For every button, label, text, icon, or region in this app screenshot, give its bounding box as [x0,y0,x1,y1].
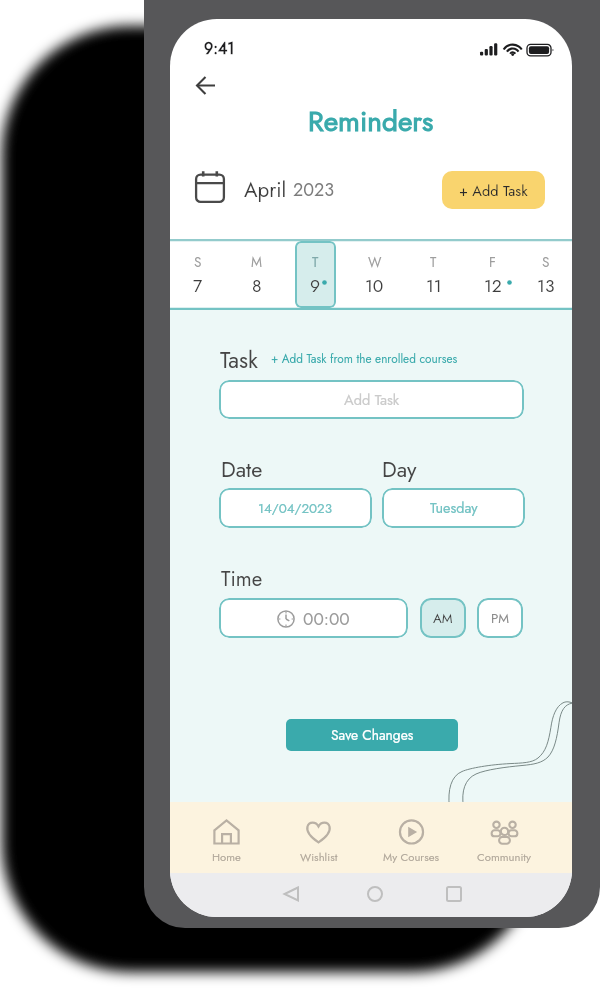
staticText: Reminders [308,101,434,135]
staticText: Wishlist [300,849,338,865]
staticText: + Add Task [459,180,528,201]
button[interactable]: Wishlist [272,802,365,873]
staticText: Day [382,454,417,485]
staticText: April [244,175,293,205]
button[interactable]: Add Task [219,380,524,419]
button[interactable]: S [177,241,218,308]
staticText: 2023 [293,177,335,203]
button[interactable]: 00:00 [219,598,408,638]
button[interactable]: S [531,241,561,308]
staticText: S [194,252,202,272]
staticText: 9:41 [204,37,235,60]
staticText: S [542,252,550,272]
button[interactable]: Back [274,881,308,907]
button[interactable]: Home [180,802,272,873]
button[interactable]: T [413,241,454,308]
staticText: 13 [537,273,555,298]
button[interactable]: PM [477,598,523,638]
staticText: M [251,252,263,272]
staticText: Community [477,849,532,865]
staticText: Add Task [344,389,400,410]
button[interactable]: Recent apps [437,881,471,907]
staticText: Date [221,454,263,485]
staticText: 12 [484,273,502,298]
button[interactable]: My Courses [365,802,458,873]
button[interactable]: Tuesday [382,488,525,528]
button[interactable]: Back [188,68,224,104]
button[interactable]: T [295,241,336,308]
button[interactable]: W [354,241,395,308]
button[interactable]: F [472,241,513,308]
button[interactable]: + Add Task [442,171,545,209]
staticText: 14/04/2023 [258,499,333,518]
staticText: 00:00 [303,606,350,631]
button[interactable]: Save Changes [286,719,458,751]
staticText: 9 [310,273,321,298]
staticText: T [430,252,437,272]
button[interactable]: M [236,241,277,308]
staticText: 11 [426,273,442,298]
button[interactable]: Home [358,881,392,907]
button[interactable]: 14/04/2023 [219,488,372,528]
button[interactable]: AM [420,598,466,638]
staticText: Home [212,849,241,865]
staticText: PM [491,609,510,628]
staticText: Task [220,344,258,376]
staticText: 7 [193,273,203,298]
staticText: T [312,252,319,272]
staticText: 8 [252,273,262,298]
staticText: F [489,252,496,272]
staticText: Tuesday [430,498,478,519]
button[interactable]: Community [458,802,551,873]
staticText: AM [433,609,453,628]
staticText: 10 [365,273,384,298]
staticText: + Add Task from the enrolled courses [271,350,458,367]
staticText: Time [221,564,263,593]
staticText: W [368,252,382,272]
staticText: Save Changes [331,725,414,745]
staticText: My Courses [383,849,440,865]
